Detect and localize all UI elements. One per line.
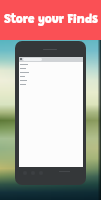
button[interactable]: [19, 66, 83, 70]
button[interactable]: [19, 70, 83, 74]
button[interactable]: [19, 82, 83, 86]
button[interactable]: Store your Finds: [0, 0, 101, 40]
button[interactable]: [19, 74, 83, 78]
staticText: Store your Finds: [4, 14, 98, 26]
button[interactable]: Search: [23, 58, 42, 61]
button[interactable]: [19, 78, 83, 82]
button[interactable]: [19, 62, 83, 66]
